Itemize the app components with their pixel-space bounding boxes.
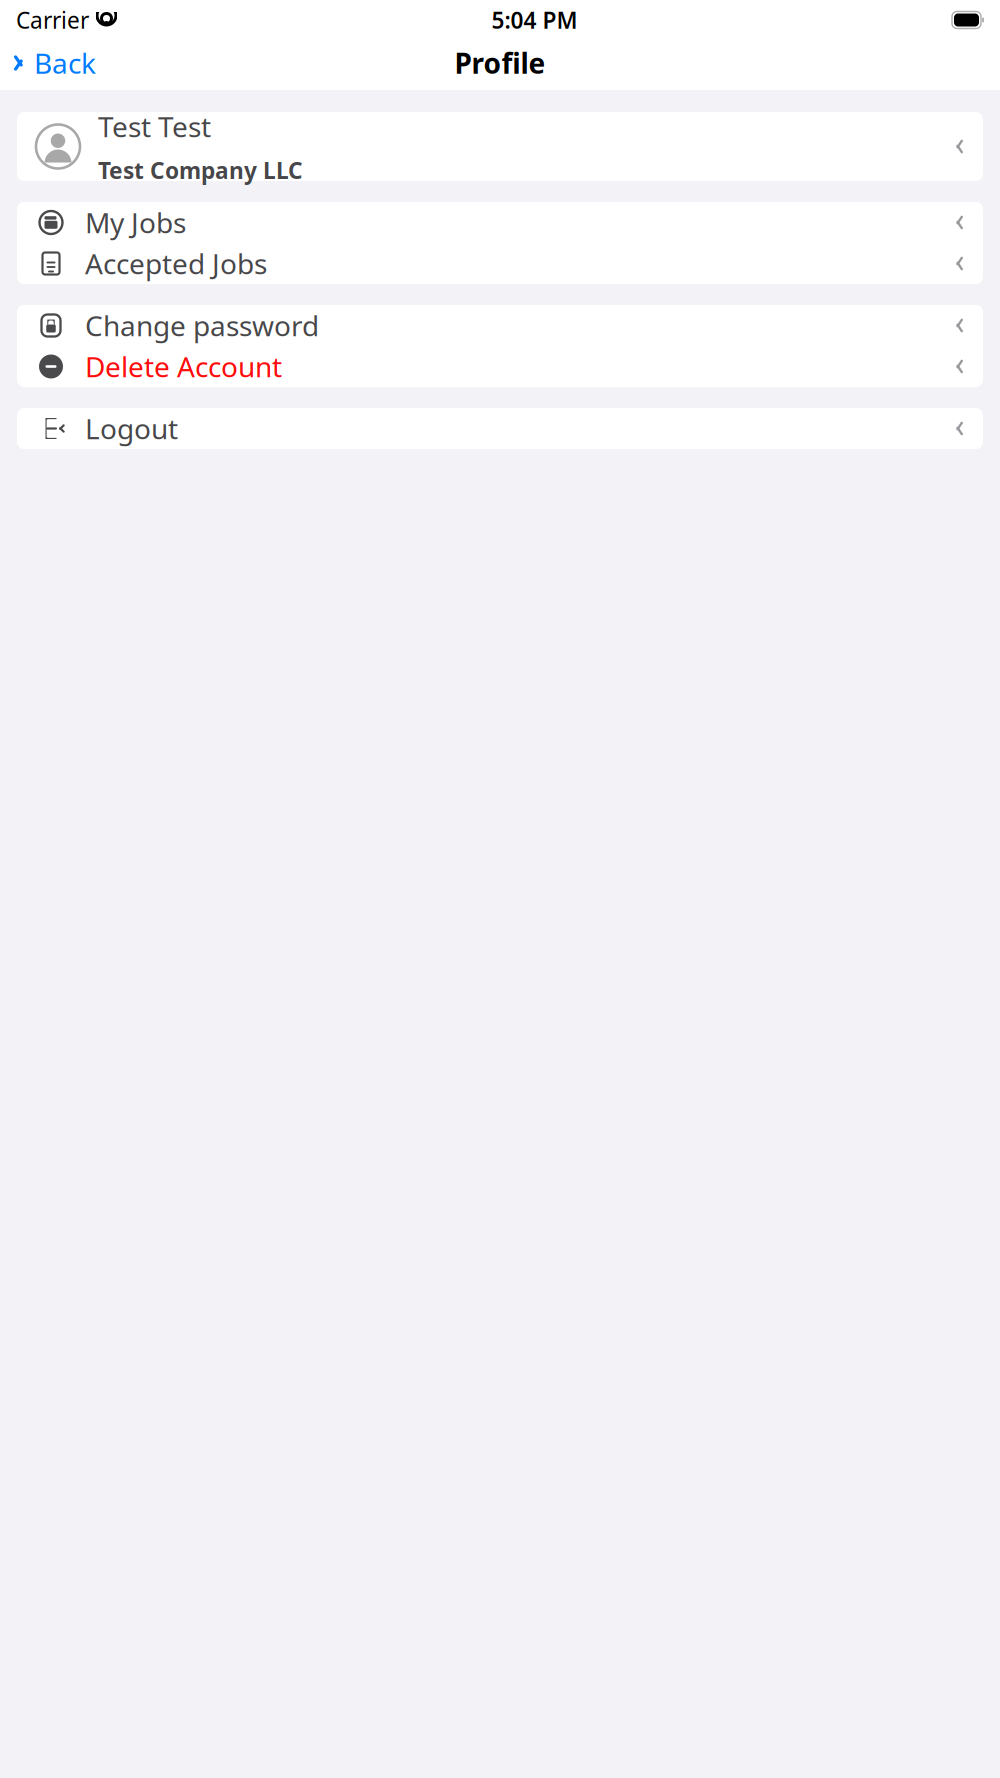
button[interactable]: Delete Account xyxy=(17,346,983,387)
staticText: Test Test xyxy=(98,108,211,145)
staticText: Accepted Jobs xyxy=(85,245,267,282)
button[interactable]: Test Test xyxy=(17,112,983,181)
staticText: Profile xyxy=(454,44,545,82)
staticText: My Jobs xyxy=(85,204,186,241)
button[interactable]: Logout xyxy=(17,408,983,449)
staticText: Delete Account xyxy=(85,348,282,385)
button[interactable]: My Jobs xyxy=(17,202,983,243)
button[interactable]: Change password xyxy=(17,305,983,346)
button[interactable]: Back xyxy=(5,38,106,88)
staticText: Logout xyxy=(85,410,178,447)
staticText: Test Company LLC xyxy=(98,155,303,185)
staticText: Back xyxy=(34,44,96,82)
staticText: 5:04 PM xyxy=(491,5,577,35)
staticText: Change password xyxy=(85,307,319,344)
staticText: Carrier xyxy=(16,5,89,35)
button[interactable]: Accepted Jobs xyxy=(17,243,983,284)
